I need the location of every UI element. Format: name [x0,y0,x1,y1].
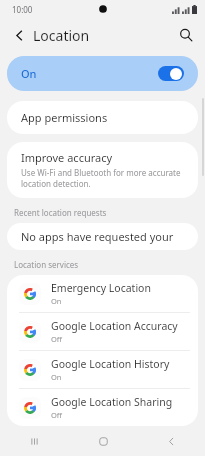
button[interactable]: Home [69,426,137,456]
staticText: Google Location History [51,357,170,371]
button[interactable]: No apps have requested your location.. [7,223,198,250]
staticText: On [51,296,62,306]
staticText: Improve accuracy [21,150,113,165]
staticText: Off [51,334,63,344]
staticText: Location services [14,259,79,270]
staticText: Emergency Location Service [51,281,186,295]
staticText: Use Wi-Fi and Bluetooth for more accurat… [21,167,184,189]
button[interactable]: Emergency Location Service [7,275,198,312]
staticText: Location [33,26,90,45]
button[interactable]: Google Location History [7,351,198,388]
staticText: On [51,372,62,382]
staticText: App permissions [21,110,108,125]
button[interactable]: On [7,56,198,91]
button[interactable]: Back [137,426,205,456]
button[interactable]: Google Location Sharing [7,389,198,426]
staticText: Google Location Sharing [51,395,173,409]
button[interactable]: Search [173,22,199,48]
button[interactable]: Back [6,22,32,48]
button[interactable]: Improve accuracy [7,142,198,198]
button[interactable]: App permissions [7,101,198,134]
button[interactable]: Recents [0,426,69,456]
staticText: No apps have requested your location.. [21,229,184,244]
staticText: 10:00 [12,4,33,15]
button[interactable]: Google Location Accuracy [7,313,198,350]
staticText: On [21,66,37,81]
staticText: Recent location requests [14,207,107,218]
staticText: Google Location Accuracy [51,319,178,333]
staticText: Off [51,410,63,420]
